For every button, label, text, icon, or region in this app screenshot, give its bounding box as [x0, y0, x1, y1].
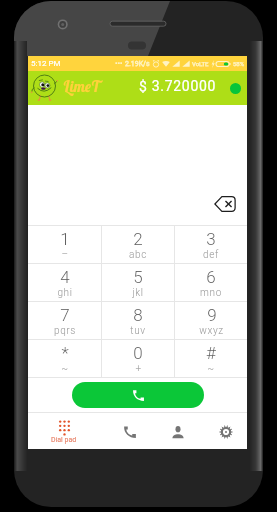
button[interactable]: Backspace: [214, 196, 236, 212]
button[interactable]: Dial pad: [39, 413, 89, 450]
staticText: Dial pad: [51, 436, 77, 444]
button[interactable]: Call: [72, 382, 204, 408]
button[interactable]: Contacts: [158, 413, 198, 450]
staticText: ⋯: [115, 59, 123, 68]
button[interactable]: *: [28, 340, 101, 377]
staticText: LimeT: [63, 77, 102, 96]
staticText: –: [61, 249, 69, 261]
staticText: ~: [207, 363, 215, 375]
staticText: 2.19K/s: [125, 60, 150, 68]
staticText: jkl: [132, 287, 144, 299]
button[interactable]: 5: [102, 264, 174, 301]
button[interactable]: Settings: [206, 413, 246, 450]
staticText: #: [206, 343, 216, 363]
staticText: 4: [60, 267, 70, 287]
button[interactable]: 7: [28, 302, 101, 339]
staticText: 9: [207, 305, 217, 325]
staticText: $ 3.720000: [139, 78, 217, 94]
staticText: 6: [206, 267, 216, 287]
staticText: pqrs: [54, 325, 76, 337]
staticText: mno: [200, 287, 222, 299]
staticText: 1: [60, 229, 70, 249]
button[interactable]: 4: [28, 264, 101, 301]
button[interactable]: 2: [102, 226, 174, 263]
staticText: 5: [133, 267, 143, 287]
button[interactable]: 8: [102, 302, 174, 339]
button[interactable]: 1: [28, 226, 101, 263]
staticText: abc: [129, 249, 147, 261]
button[interactable]: 9: [175, 302, 247, 339]
button[interactable]: #: [175, 340, 247, 377]
staticText: 3: [206, 229, 216, 249]
staticText: *: [61, 343, 69, 363]
button[interactable]: 3: [175, 226, 247, 263]
staticText: 7: [60, 305, 70, 325]
staticText: 5:12 PM: [31, 59, 61, 68]
button[interactable]: Calls: [110, 413, 150, 450]
staticText: wxyz: [199, 325, 224, 337]
staticText: +: [135, 363, 142, 375]
staticText: 0: [133, 343, 143, 363]
staticText: tuv: [130, 325, 146, 337]
staticText: 2: [133, 229, 143, 249]
staticText: VoLTE: [192, 60, 209, 67]
button[interactable]: 6: [175, 264, 247, 301]
staticText: 58%: [233, 60, 245, 67]
staticText: def: [203, 249, 219, 261]
staticText: 8: [133, 305, 143, 325]
button[interactable]: 0: [102, 340, 174, 377]
staticText: ~: [61, 363, 69, 375]
staticText: ghi: [57, 287, 73, 299]
